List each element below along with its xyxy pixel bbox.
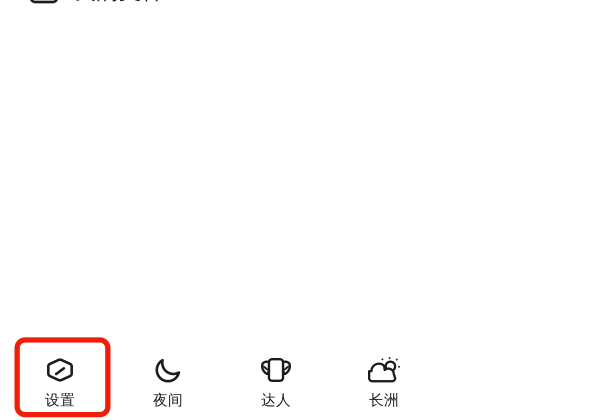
staticText: 设置 <box>45 391 75 409</box>
staticText: 达人 <box>261 391 291 409</box>
button[interactable]: 夜间 <box>114 343 222 420</box>
staticText: 长洲 <box>369 391 399 409</box>
button[interactable]: 达人 <box>222 343 330 420</box>
staticText: 夜间 <box>153 391 183 409</box>
staticText: 我的文件 <box>73 0 165 5</box>
button[interactable]: 设置 <box>6 343 114 420</box>
button[interactable]: 长洲 <box>330 343 438 420</box>
